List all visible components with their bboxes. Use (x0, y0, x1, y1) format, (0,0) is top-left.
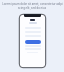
button[interactable] (25, 40, 41, 44)
staticText: scing elit, sed do eius (18, 6, 46, 10)
staticText: Lorem ipsum dolor sit amet, consectetur … (2, 2, 63, 6)
